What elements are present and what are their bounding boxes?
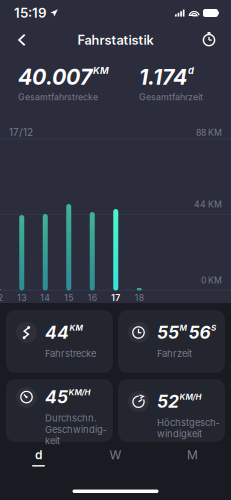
button[interactable]: Timer: [191, 26, 227, 54]
button[interactable]: 55: [118, 310, 225, 373]
staticText: 13: [17, 292, 26, 303]
button[interactable]: M: [154, 443, 231, 471]
staticText: d: [188, 65, 194, 76]
staticText: Fahrstatistik: [77, 32, 153, 48]
staticText: d: [35, 448, 42, 462]
staticText: 56: [188, 322, 210, 343]
staticText: Gesamtfahrstrecke: [18, 92, 98, 102]
staticText: 18: [135, 292, 144, 303]
staticText: S: [211, 323, 216, 333]
button[interactable]: 52: [118, 379, 225, 442]
button[interactable]: Back: [4, 26, 40, 54]
button[interactable]: 45: [6, 379, 113, 442]
staticText: 14: [40, 292, 50, 303]
staticText: 45: [45, 387, 68, 408]
staticText: 55: [157, 322, 179, 343]
staticText: Durchschn. Geschwindigkeit: [45, 413, 106, 446]
staticText: 16: [88, 292, 97, 303]
staticText: KM/H: [68, 388, 90, 397]
staticText: 12: [0, 292, 3, 303]
staticText: W: [109, 448, 121, 462]
staticText: 0 KM: [201, 275, 222, 285]
staticText: Fahrstrecke: [45, 348, 96, 359]
button[interactable]: d: [0, 443, 77, 471]
staticText: 1.174: [139, 64, 187, 90]
staticText: 40.007: [18, 64, 92, 90]
staticText: M: [187, 448, 198, 462]
button[interactable]: W: [77, 443, 154, 471]
staticText: KM: [69, 323, 82, 333]
staticText: KM: [93, 65, 109, 76]
staticText: M: [179, 323, 186, 333]
staticText: Gesamtfahrzeit: [139, 92, 203, 102]
button[interactable]: 44: [6, 310, 113, 373]
staticText: 88 KM: [196, 127, 222, 138]
staticText: 17/12: [9, 126, 33, 138]
staticText: 44: [45, 322, 69, 343]
staticText: 17: [111, 292, 120, 303]
staticText: 52: [157, 391, 179, 412]
staticText: Fahrzeit: [157, 348, 192, 359]
staticText: 44 KM: [194, 199, 222, 209]
staticText: 15:19: [14, 5, 47, 21]
staticText: KM/H: [179, 392, 201, 402]
staticText: 15: [64, 292, 73, 303]
staticText: Höchstgeschwindigkeit: [157, 417, 219, 440]
